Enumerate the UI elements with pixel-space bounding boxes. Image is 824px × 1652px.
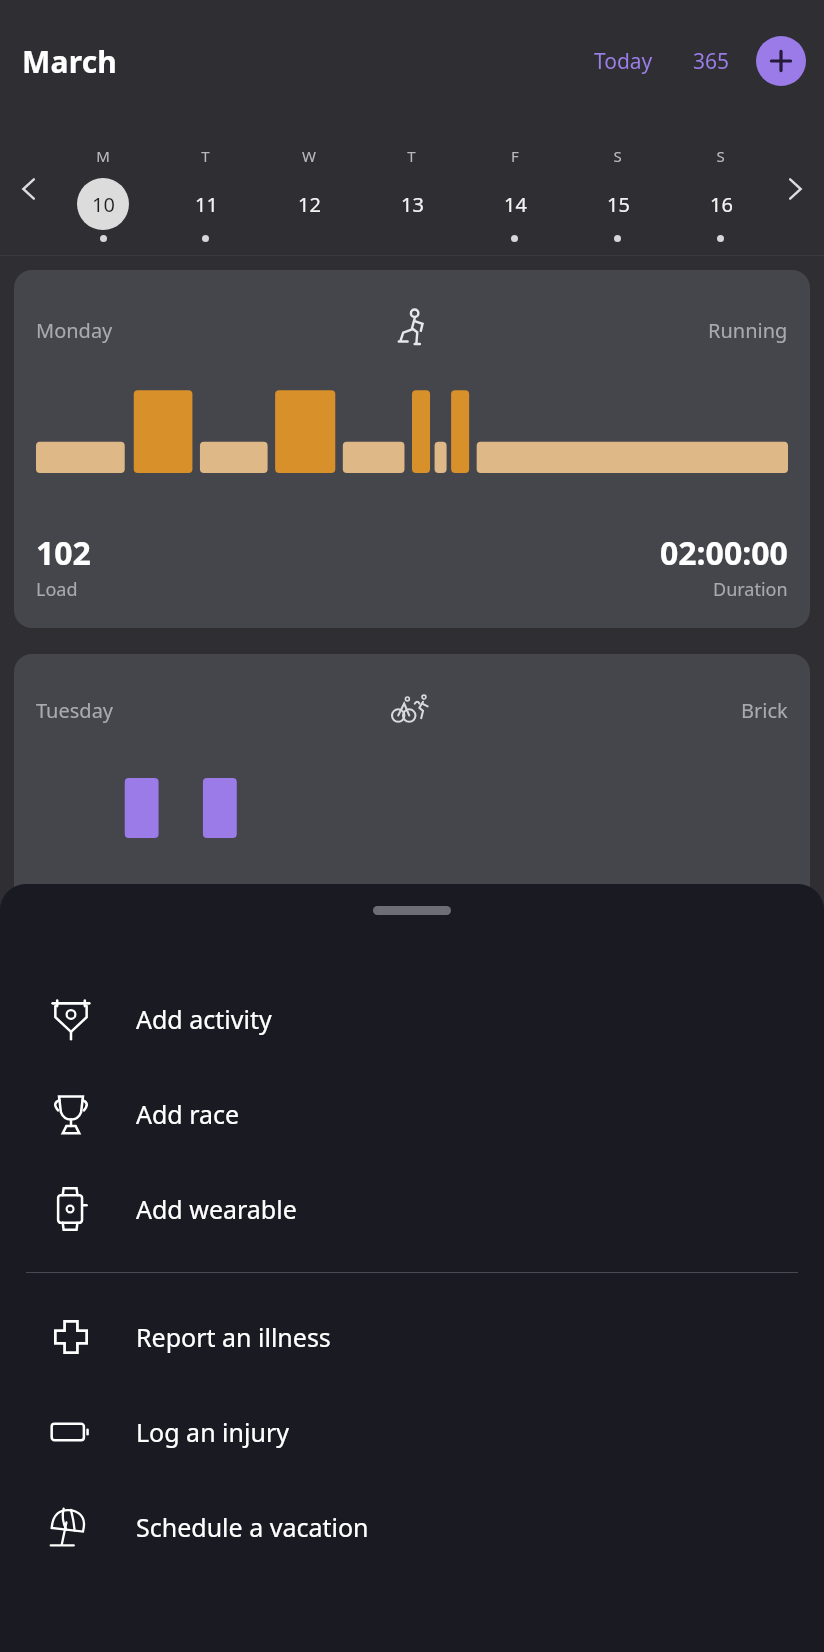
staticText: 02:00:00 (660, 531, 788, 575)
staticText: 13 (401, 191, 424, 218)
button[interactable]: Add race (0, 1066, 824, 1161)
button[interactable]: T (360, 136, 463, 242)
button[interactable]: S (669, 136, 772, 242)
staticText: Running (708, 317, 788, 344)
staticText: F (511, 146, 519, 166)
staticText: 10 (92, 191, 115, 218)
staticText: 11 (195, 191, 218, 218)
button[interactable]: M (52, 136, 154, 242)
staticText: 14 (504, 191, 527, 218)
button[interactable]: T (154, 136, 257, 242)
staticText: S (613, 146, 622, 166)
staticText: Today (594, 47, 653, 76)
button[interactable]: 365 (685, 41, 738, 82)
staticText: March (22, 41, 118, 82)
button[interactable]: F (463, 136, 566, 242)
button[interactable]: Log an injury (0, 1384, 824, 1479)
staticText: Duration (713, 577, 788, 602)
staticText: S (716, 146, 725, 166)
staticText: Brick (741, 697, 788, 724)
button[interactable]: Tuesday (14, 654, 810, 984)
button[interactable]: Schedule a vacation (0, 1479, 824, 1574)
staticText: Schedule a vacation (136, 1510, 369, 1544)
staticText: Load (36, 577, 78, 602)
button[interactable]: Next week (772, 166, 818, 212)
staticText: 102 (36, 531, 91, 575)
button[interactable]: Report an illness (0, 1289, 824, 1384)
button[interactable]: Previous week (6, 166, 52, 212)
staticText: Tuesday (36, 697, 114, 724)
button[interactable]: W (257, 136, 360, 242)
button[interactable]: Today (586, 41, 661, 82)
staticText: Add race (136, 1097, 240, 1131)
staticText: M (96, 146, 110, 166)
staticText: 365 (693, 47, 730, 76)
staticText: W (302, 146, 316, 166)
staticText: Report an illness (136, 1320, 331, 1354)
button[interactable]: Monday (14, 270, 810, 628)
staticText: Monday (36, 317, 113, 344)
staticText: 15 (607, 191, 630, 218)
staticText: T (201, 146, 210, 166)
staticText: 12 (298, 191, 321, 218)
button[interactable]: Add activity (0, 971, 824, 1066)
staticText: 16 (710, 191, 733, 218)
button[interactable]: Add wearable (0, 1161, 824, 1256)
button[interactable]: S (566, 136, 669, 242)
staticText: T (407, 146, 416, 166)
staticText: Add wearable (136, 1192, 297, 1226)
staticText: Log an injury (136, 1415, 289, 1449)
staticText: Add activity (136, 1002, 272, 1036)
button[interactable]: Add (756, 36, 806, 86)
